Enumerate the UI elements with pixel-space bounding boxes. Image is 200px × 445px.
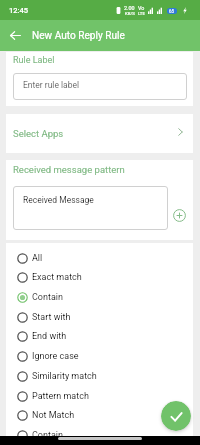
staticText: 2.00 xyxy=(124,5,135,11)
button[interactable]: End with xyxy=(6,326,193,346)
staticText: Vo xyxy=(138,5,145,11)
staticText: Similarity match xyxy=(32,371,97,382)
button[interactable]: Exact match xyxy=(6,267,193,287)
staticText: KB/S xyxy=(125,11,135,16)
button[interactable]: Start with xyxy=(6,307,193,327)
staticText: LTE xyxy=(138,11,145,16)
button[interactable]: Add pattern xyxy=(168,186,190,230)
staticText: 65 xyxy=(169,9,175,14)
staticText: Enter rule label xyxy=(23,80,80,90)
staticText: Exact match xyxy=(32,272,82,283)
button[interactable]: Pattern match xyxy=(6,386,193,406)
button[interactable]: Save rule xyxy=(161,401,191,431)
staticText: Select Apps xyxy=(13,128,64,139)
button[interactable]: Back xyxy=(0,20,30,51)
staticText: 12:45 xyxy=(9,6,29,15)
button[interactable]: Contain xyxy=(6,425,193,445)
staticText: New Auto Reply Rule xyxy=(32,30,125,42)
button[interactable]: Not Match xyxy=(6,405,193,425)
button[interactable]: Ignore case xyxy=(6,346,193,366)
staticText: Ignore case xyxy=(32,351,79,362)
staticText: End with xyxy=(32,331,67,342)
button[interactable]: Select Apps xyxy=(6,114,193,153)
staticText: Contain xyxy=(32,292,63,303)
staticText: Rule Label xyxy=(13,55,55,66)
staticText: Contain xyxy=(32,430,63,441)
staticText: Start with xyxy=(32,312,71,323)
button[interactable]: Contain xyxy=(6,287,193,307)
staticText: Pattern match xyxy=(32,391,89,402)
button[interactable]: All xyxy=(6,248,193,268)
staticText: All xyxy=(32,253,43,264)
staticText: Received Message xyxy=(23,195,94,205)
staticText: Not Match xyxy=(32,410,75,421)
button[interactable]: Similarity match xyxy=(6,366,193,386)
staticText: Received message pattern xyxy=(13,164,125,175)
